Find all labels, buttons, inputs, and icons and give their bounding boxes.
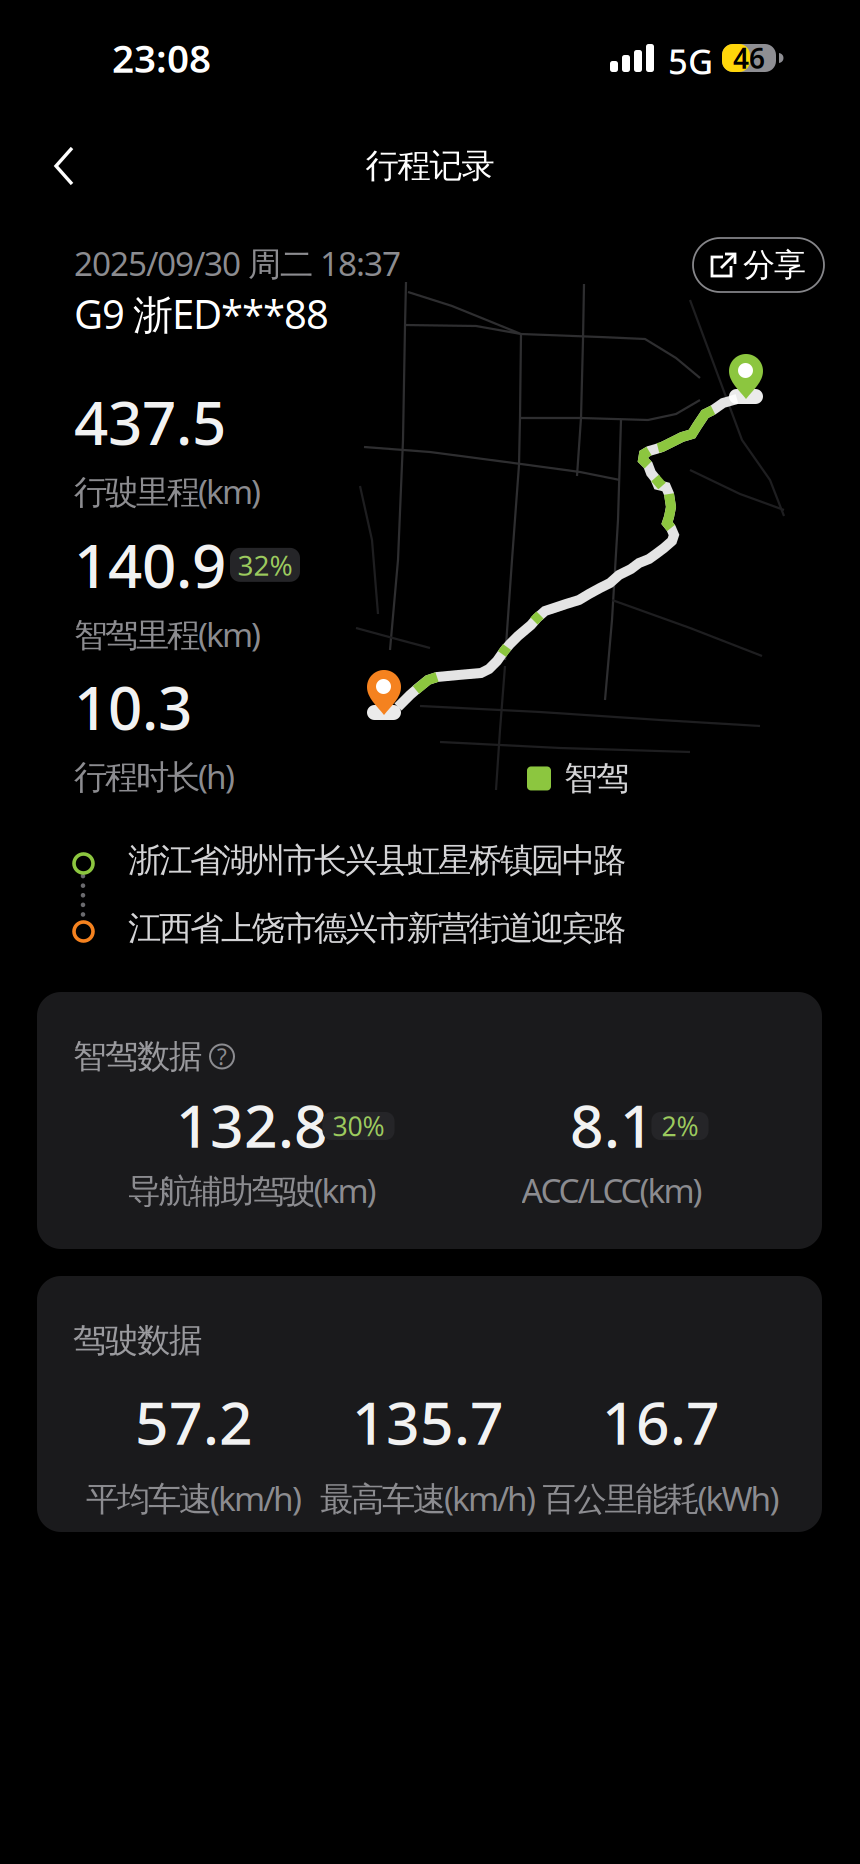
staticText: 2025/09/30 周二 18:37 <box>74 241 401 285</box>
staticText: 30% <box>332 1108 384 1144</box>
staticText: 135.7 <box>352 1383 504 1461</box>
staticText: 百公里能耗(kWh) <box>542 1476 779 1520</box>
staticText: 行驶里程(km) <box>74 469 261 513</box>
staticText: 智驾数据 <box>73 1036 202 1077</box>
staticText: 驾驶数据 <box>73 1320 202 1361</box>
staticText: 10.3 <box>74 667 192 747</box>
staticText: 2% <box>661 1108 698 1144</box>
staticText: 8.1 <box>570 1086 654 1164</box>
staticText: 智驾 <box>564 758 629 799</box>
staticText: 16.7 <box>602 1383 720 1461</box>
staticText: ? <box>217 1041 227 1071</box>
staticText: 5G <box>668 38 713 84</box>
staticText: 437.5 <box>74 382 226 462</box>
staticText: 32% <box>237 546 292 583</box>
button[interactable]: Back <box>16 118 112 214</box>
staticText: 57.2 <box>135 1383 253 1461</box>
staticText: G9 浙ED***88 <box>74 287 329 340</box>
staticText: 分享 <box>743 245 806 285</box>
staticText: 平均车速(km/h) <box>86 1476 302 1520</box>
staticText: 浙江省湖州市长兴县虹星桥镇园中路 <box>128 840 626 881</box>
staticText: 江西省上饶市德兴市新营街道迎宾路 <box>128 908 626 949</box>
button[interactable]: 分享 <box>693 238 824 292</box>
staticText: 行程时长(h) <box>74 754 235 798</box>
staticText: 46 <box>733 39 765 77</box>
staticText: 最高车速(km/h) <box>320 1476 536 1520</box>
staticText: 导航辅助驾驶(km) <box>127 1168 376 1212</box>
staticText: ACC/LCC(km) <box>521 1168 702 1212</box>
staticText: 140.9 <box>74 525 226 605</box>
staticText: 23:08 <box>112 32 211 83</box>
staticText: 132.8 <box>176 1086 328 1164</box>
staticText: 行程记录 <box>365 145 494 186</box>
staticText: 智驾里程(km) <box>74 612 261 656</box>
